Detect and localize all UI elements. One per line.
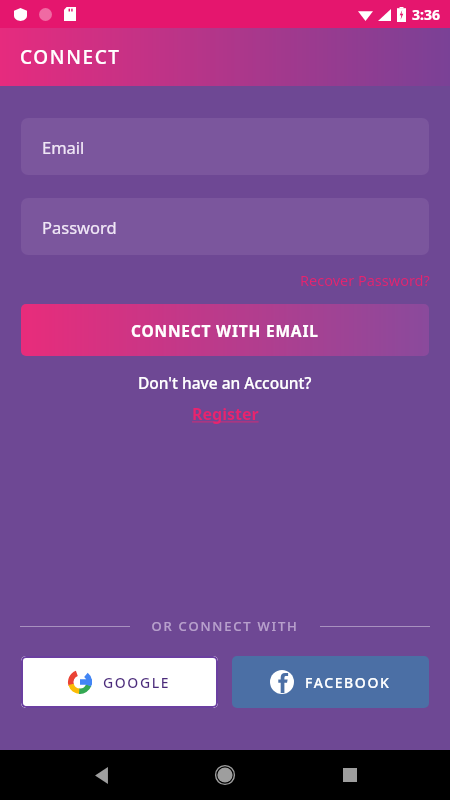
- button[interactable]: Recover Password?: [298, 267, 432, 293]
- staticText: Email: [42, 136, 85, 158]
- staticText: 3:36: [412, 5, 440, 24]
- staticText: Don't have an Account?: [138, 372, 312, 393]
- button[interactable]: Register: [188, 401, 263, 427]
- staticText: Password: [42, 216, 117, 238]
- button[interactable]: Google: [21, 656, 218, 708]
- button[interactable]: Back: [77, 751, 125, 799]
- staticText: CONNECT WITH EMAIL: [131, 320, 319, 341]
- button[interactable]: Recent apps: [326, 751, 374, 799]
- staticText: CONNECT: [20, 44, 121, 70]
- staticText: Recover Password?: [300, 270, 430, 290]
- staticText: GOOGLE: [103, 673, 171, 692]
- button[interactable]: Email: [21, 118, 429, 175]
- button[interactable]: Password: [21, 198, 429, 255]
- button[interactable]: CONNECT WITH EMAIL: [21, 304, 429, 356]
- staticText: OR CONNECT WITH: [151, 617, 299, 635]
- other: Facebook: [270, 670, 294, 694]
- staticText: FACEBOOK: [305, 673, 391, 692]
- button[interactable]: Home: [201, 751, 249, 799]
- staticText: Register: [192, 403, 259, 425]
- other: Google: [68, 670, 92, 694]
- button[interactable]: Facebook: [232, 656, 429, 708]
